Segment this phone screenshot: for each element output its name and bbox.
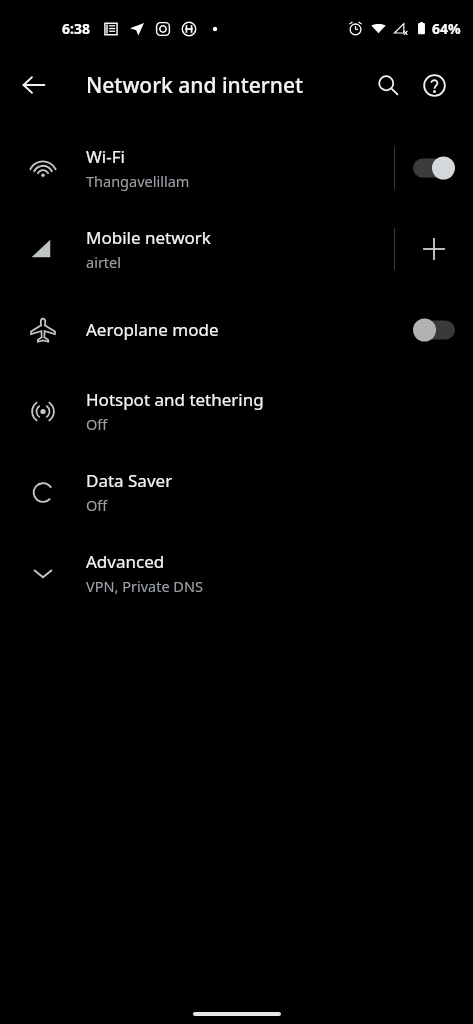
button[interactable]: Aeroplane mode: [0, 289, 473, 370]
button[interactable]: Back: [10, 61, 58, 109]
staticText: 64%: [432, 19, 461, 38]
staticText: Aeroplane mode: [86, 318, 219, 341]
button[interactable]: Data Saver: [0, 451, 473, 532]
staticText: Wi-Fi: [86, 145, 125, 168]
button[interactable]: Help: [411, 62, 457, 108]
button[interactable]: Add network: [395, 221, 473, 277]
staticText: VPN, Private DNS: [86, 576, 203, 596]
staticText: Network and internet: [86, 71, 303, 100]
staticText: Off: [86, 414, 108, 434]
button[interactable]: Hotspot and tethering: [0, 370, 473, 451]
staticText: Thangavelillam: [86, 171, 190, 191]
staticText: Off: [86, 495, 108, 515]
staticText: Mobile network: [86, 226, 211, 249]
staticText: Hotspot and tethering: [86, 388, 264, 411]
staticText: Advanced: [86, 550, 165, 573]
staticText: 6:38: [62, 19, 90, 38]
button[interactable]: Advanced: [0, 532, 473, 613]
staticText: Data Saver: [86, 469, 173, 492]
button[interactable]: Wi-Fi: [0, 127, 473, 208]
staticText: airtel: [86, 252, 122, 272]
button[interactable]: Toggle Wi-Fi: [395, 140, 473, 196]
button[interactable]: Search: [365, 62, 411, 108]
button[interactable]: Toggle Aeroplane mode: [395, 302, 473, 358]
button[interactable]: Mobile network: [0, 208, 473, 289]
